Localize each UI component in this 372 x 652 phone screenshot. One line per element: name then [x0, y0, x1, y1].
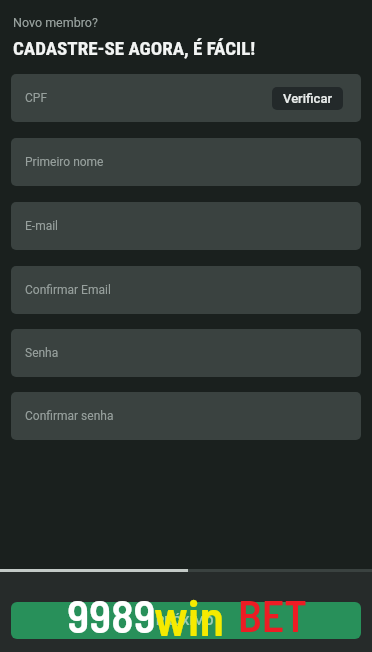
staticText: 9989 [67, 587, 156, 642]
staticText: PRÓXIMO [156, 613, 214, 628]
staticText: E-mail [25, 219, 59, 233]
staticText: Confirmar Email [25, 283, 111, 297]
button[interactable]: CPF [11, 74, 361, 122]
staticText: Senha [25, 346, 59, 360]
button[interactable]: Confirmar senha [11, 392, 361, 440]
button[interactable]: Primeiro nome [11, 138, 361, 186]
staticText: Primeiro nome [25, 155, 104, 169]
staticText: Confirmar senha [25, 409, 114, 423]
staticText: CPF [25, 91, 48, 105]
button[interactable]: Verificar [272, 87, 343, 110]
staticText: CADASTRE-SE AGORA, É FÁCIL! [13, 37, 256, 59]
staticText: Novo membro? [13, 15, 98, 30]
button[interactable]: Senha [11, 329, 361, 377]
button[interactable]: Confirmar Email [11, 266, 361, 314]
staticText: Verificar [283, 91, 332, 106]
button[interactable]: 9989win BET [11, 602, 361, 639]
staticText: BET [238, 588, 308, 641]
staticText: win [154, 586, 225, 646]
button[interactable]: E-mail [11, 202, 361, 250]
